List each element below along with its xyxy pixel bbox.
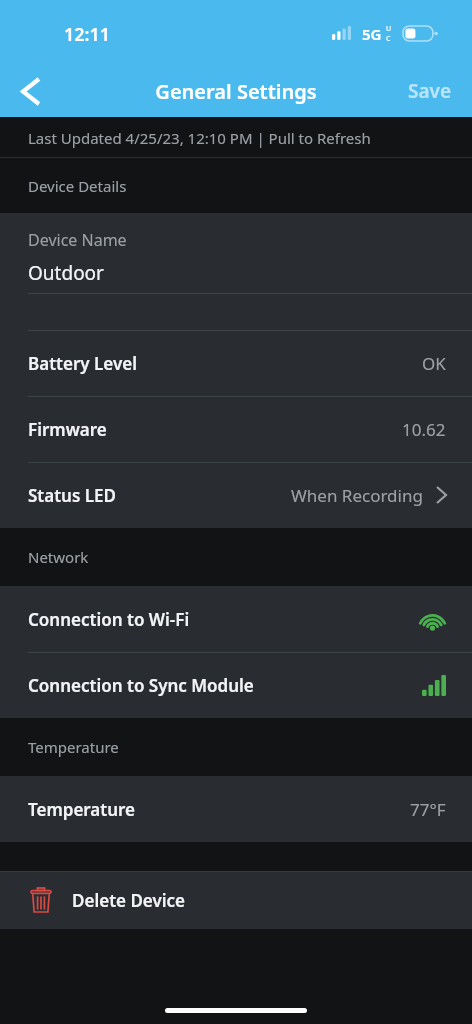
staticText: Status LED xyxy=(28,484,116,507)
button[interactable]: Delete Device xyxy=(0,871,472,929)
staticText: 10.62 xyxy=(402,418,446,441)
staticText: Outdoor xyxy=(28,260,104,286)
button[interactable]: Connection to Wi-Fi xyxy=(0,586,472,652)
staticText: 77°F xyxy=(410,798,446,821)
button[interactable]: Temperature xyxy=(0,776,472,842)
button[interactable]: Connection to Sync Module xyxy=(0,652,472,718)
button[interactable]: Back xyxy=(0,68,62,114)
staticText: Firmware xyxy=(28,418,107,441)
button[interactable]: Firmware xyxy=(0,396,472,462)
staticText: Temperature xyxy=(28,737,119,757)
staticText: 12:11 xyxy=(64,22,111,47)
staticText: General Settings xyxy=(155,78,317,105)
button[interactable]: Device Name xyxy=(0,213,472,330)
staticText: Device Name xyxy=(28,229,127,251)
button[interactable]: Battery Level xyxy=(0,330,472,396)
staticText: Connection to Wi-Fi xyxy=(28,608,190,631)
staticText: Temperature xyxy=(28,798,136,821)
staticText: 5G xyxy=(362,24,382,44)
staticText: OK xyxy=(422,352,446,375)
staticText: Device Details xyxy=(28,176,127,196)
staticText: Battery Level xyxy=(28,352,137,375)
staticText: Connection to Sync Module xyxy=(28,674,254,697)
staticText: Save xyxy=(408,78,452,104)
staticText: Delete Device xyxy=(72,889,186,912)
button[interactable]: Status LED xyxy=(0,462,472,528)
staticText: Network xyxy=(28,547,89,567)
staticText: U xyxy=(386,24,392,34)
button[interactable]: Save xyxy=(388,68,472,114)
staticText: When Recording xyxy=(291,484,423,507)
staticText: Last Updated 4/25/23, 12:10 PM | Pull to… xyxy=(28,128,371,148)
staticText: C xyxy=(386,34,391,44)
